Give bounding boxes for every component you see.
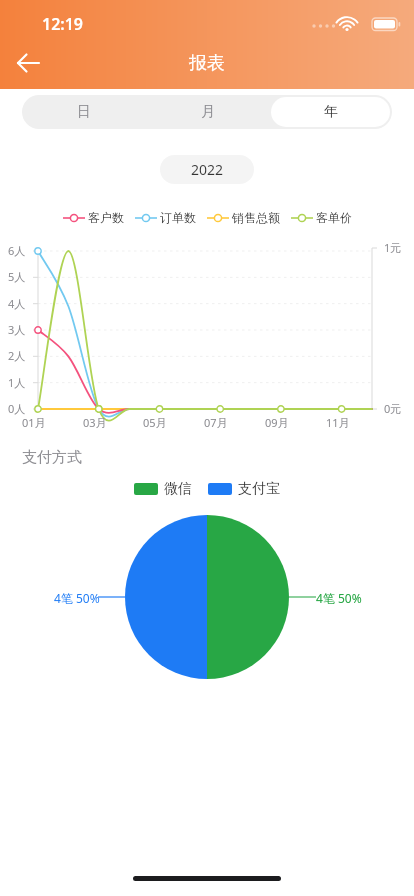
button[interactable]: 订单数 bbox=[135, 210, 196, 225]
button[interactable]: Back bbox=[6, 41, 50, 85]
staticText: 4笔 50% bbox=[54, 590, 100, 606]
staticText: 09月 bbox=[265, 415, 289, 430]
staticText: 0元 bbox=[384, 401, 402, 416]
staticText: 支付方式 bbox=[22, 448, 82, 467]
staticText: 05月 bbox=[143, 415, 167, 430]
staticText: 日 bbox=[77, 103, 91, 121]
staticText: 销售总额 bbox=[232, 210, 280, 225]
button[interactable]: 2022 bbox=[160, 155, 254, 184]
staticText: 客单价 bbox=[316, 210, 352, 225]
staticText: 月 bbox=[201, 103, 215, 121]
staticText: 0人 bbox=[8, 401, 26, 416]
staticText: 报表 bbox=[189, 52, 225, 75]
staticText: 01月 bbox=[22, 415, 46, 430]
button[interactable]: 支付宝 bbox=[208, 480, 280, 498]
button[interactable]: 客单价 bbox=[291, 210, 352, 225]
staticText: 年 bbox=[324, 103, 338, 121]
staticText: 支付宝 bbox=[238, 480, 280, 498]
staticText: 客户数 bbox=[88, 210, 124, 225]
staticText: 2022 bbox=[191, 160, 224, 179]
staticText: 6人 bbox=[8, 243, 26, 258]
staticText: 12:19 bbox=[42, 13, 84, 35]
staticText: 微信 bbox=[164, 480, 192, 498]
staticText: 1人 bbox=[8, 375, 26, 390]
staticText: 2人 bbox=[8, 348, 26, 363]
staticText: 07月 bbox=[204, 415, 228, 430]
staticText: 4笔 50% bbox=[316, 590, 362, 606]
staticText: 11月 bbox=[326, 415, 350, 430]
staticText: 4人 bbox=[8, 296, 26, 311]
button[interactable]: 销售总额 bbox=[207, 210, 280, 225]
staticText: 3人 bbox=[8, 322, 26, 337]
staticText: 订单数 bbox=[160, 210, 196, 225]
staticText: 5人 bbox=[8, 269, 26, 284]
button[interactable]: 年 bbox=[271, 97, 390, 127]
button[interactable]: 月 bbox=[148, 97, 267, 127]
button[interactable]: 客户数 bbox=[63, 210, 124, 225]
button[interactable]: 日 bbox=[24, 97, 144, 127]
staticText: 03月 bbox=[83, 415, 107, 430]
button[interactable]: 微信 bbox=[134, 480, 192, 498]
staticText: 1元 bbox=[384, 240, 402, 255]
